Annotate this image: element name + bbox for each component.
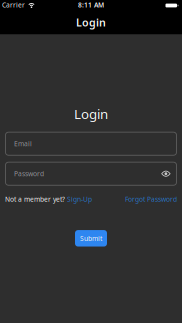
button[interactable]: Sign-Up (67, 195, 92, 204)
staticText: Login (76, 15, 106, 29)
staticText: Login (74, 105, 108, 123)
staticText: 8:11 AM (78, 1, 104, 9)
staticText: Password (14, 169, 44, 178)
button[interactable]: Forgot Password (125, 195, 177, 204)
button[interactable]: Submit (75, 230, 107, 247)
button[interactable]: Email (5, 132, 177, 156)
staticText: Email (14, 139, 32, 148)
staticText: Carrier (2, 1, 25, 9)
staticText: Forgot Password (125, 195, 177, 204)
button[interactable]: Password (5, 162, 177, 186)
staticText: Sign-Up (67, 195, 92, 204)
button[interactable]: Show Password (161, 171, 170, 177)
staticText: Not a member yet? (5, 195, 65, 204)
staticText: Submit (80, 234, 102, 243)
